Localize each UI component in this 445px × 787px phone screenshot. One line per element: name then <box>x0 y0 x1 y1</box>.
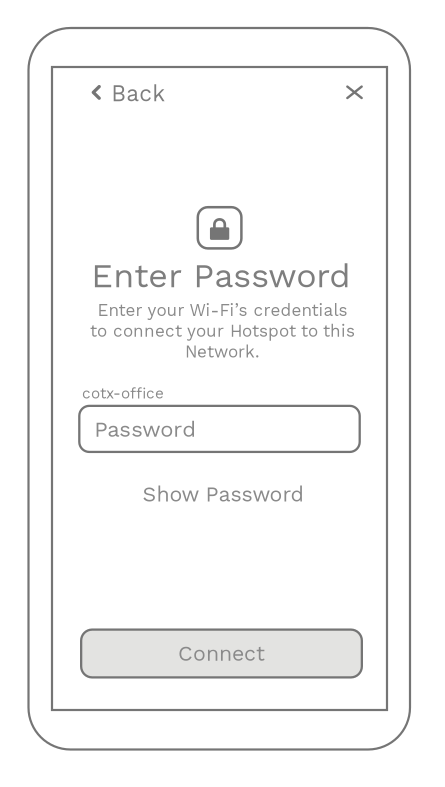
button[interactable]: Connect <box>81 630 362 677</box>
button[interactable]: Back <box>65 73 163 113</box>
staticText: Enter your Wi-Fi’s credentials <box>97 300 347 320</box>
staticText: to connect your Hotspot to this <box>90 321 355 341</box>
button[interactable]: Show Password <box>127 473 320 516</box>
staticText: Network. <box>185 342 260 362</box>
staticText: Show Password <box>143 482 304 507</box>
staticText: Password <box>94 416 196 442</box>
staticText: cotx-office <box>82 384 164 402</box>
staticText: Back <box>111 80 165 107</box>
staticText: Enter Password <box>91 256 350 295</box>
staticText: Connect <box>178 641 265 666</box>
button[interactable]: Close <box>333 72 376 112</box>
